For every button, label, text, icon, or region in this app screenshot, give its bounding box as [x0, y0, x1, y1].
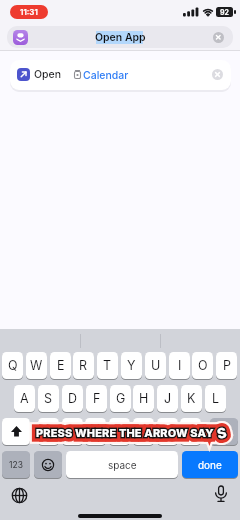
- button[interactable]: Y: [121, 352, 142, 379]
- button[interactable]: [7, 26, 233, 48]
- staticText: B: [139, 424, 148, 439]
- button[interactable]: E: [50, 352, 71, 379]
- button[interactable]: [34, 451, 62, 478]
- button[interactable]: Calendar: [83, 60, 129, 90]
- staticText: A: [20, 391, 29, 406]
- staticText: J: [164, 391, 172, 406]
- staticText: 123: [9, 460, 23, 470]
- button[interactable]: C: [85, 418, 106, 445]
- button[interactable]: A: [14, 385, 35, 412]
- staticText: S: [215, 423, 229, 442]
- button[interactable]: G: [110, 385, 131, 412]
- button[interactable]: D: [62, 385, 83, 412]
- staticText: S: [215, 423, 229, 442]
- button[interactable]: 123: [2, 451, 30, 478]
- staticText: S: [215, 423, 229, 442]
- button[interactable]: W: [26, 352, 47, 379]
- button[interactable]: I: [169, 352, 190, 379]
- button[interactable]: L: [205, 385, 226, 412]
- staticText: V: [115, 424, 124, 439]
- staticText: Z: [45, 424, 53, 439]
- staticText: M: [185, 424, 197, 439]
- staticText: done: [198, 459, 222, 471]
- staticText: Calendar: [83, 69, 129, 82]
- button[interactable]: [11, 487, 28, 504]
- staticText: H: [139, 391, 149, 406]
- button[interactable]: [13, 30, 28, 45]
- staticText: I: [178, 358, 182, 373]
- staticText: Y: [127, 358, 136, 373]
- staticText: D: [68, 391, 78, 406]
- staticText: S: [44, 391, 53, 406]
- staticText: F: [93, 391, 101, 406]
- button[interactable]: B: [133, 418, 154, 445]
- button[interactable]: M: [180, 418, 201, 445]
- button[interactable]: Q: [2, 352, 23, 379]
- staticText: PRESS WHERE THE ARROW SAY: [36, 426, 214, 439]
- button[interactable]: X: [62, 418, 83, 445]
- button[interactable]: [210, 418, 238, 445]
- staticText: Q: [8, 358, 18, 373]
- button[interactable]: H: [133, 385, 154, 412]
- button[interactable]: space: [66, 451, 178, 478]
- button[interactable]: done: [182, 451, 238, 478]
- button[interactable]: [10, 60, 231, 90]
- button[interactable]: T: [97, 352, 118, 379]
- button[interactable]: N: [157, 418, 178, 445]
- staticText: T: [103, 358, 112, 373]
- staticText: R: [79, 358, 88, 373]
- staticText: N: [163, 424, 173, 439]
- staticText: 11:31: [20, 7, 38, 17]
- button[interactable]: S: [38, 385, 59, 412]
- staticText: G: [116, 391, 126, 406]
- staticText: PRESS WHERE THE ARROW SAY: [36, 426, 214, 439]
- staticText: PRESS WHERE THE ARROW SAY: [36, 426, 214, 439]
- staticText: S: [215, 423, 229, 442]
- button[interactable]: V: [109, 418, 130, 445]
- staticText: Open: [34, 68, 62, 81]
- staticText: 92: [220, 8, 229, 16]
- button[interactable]: Z: [38, 418, 59, 445]
- staticText: K: [187, 391, 196, 406]
- staticText: Open App: [95, 31, 146, 44]
- staticText: U: [151, 358, 161, 373]
- button[interactable]: K: [181, 385, 202, 412]
- staticText: E: [57, 358, 65, 373]
- button[interactable]: [213, 32, 224, 43]
- staticText: X: [68, 424, 77, 439]
- button[interactable]: R: [73, 352, 94, 379]
- staticText: L: [212, 391, 220, 406]
- staticText: O: [198, 358, 208, 373]
- staticText: P: [223, 358, 231, 373]
- button[interactable]: [212, 69, 223, 80]
- staticText: space: [108, 459, 137, 471]
- button[interactable]: O: [192, 352, 213, 379]
- staticText: C: [91, 424, 101, 439]
- button[interactable]: F: [86, 385, 107, 412]
- staticText: W: [30, 358, 43, 373]
- button[interactable]: [2, 418, 30, 445]
- button[interactable]: [214, 485, 228, 504]
- button[interactable]: 11:31: [10, 5, 48, 19]
- staticText: PRESS WHERE THE ARROW SAY: [36, 426, 214, 439]
- button[interactable]: J: [157, 385, 178, 412]
- button[interactable]: U: [145, 352, 166, 379]
- button[interactable]: P: [216, 352, 237, 379]
